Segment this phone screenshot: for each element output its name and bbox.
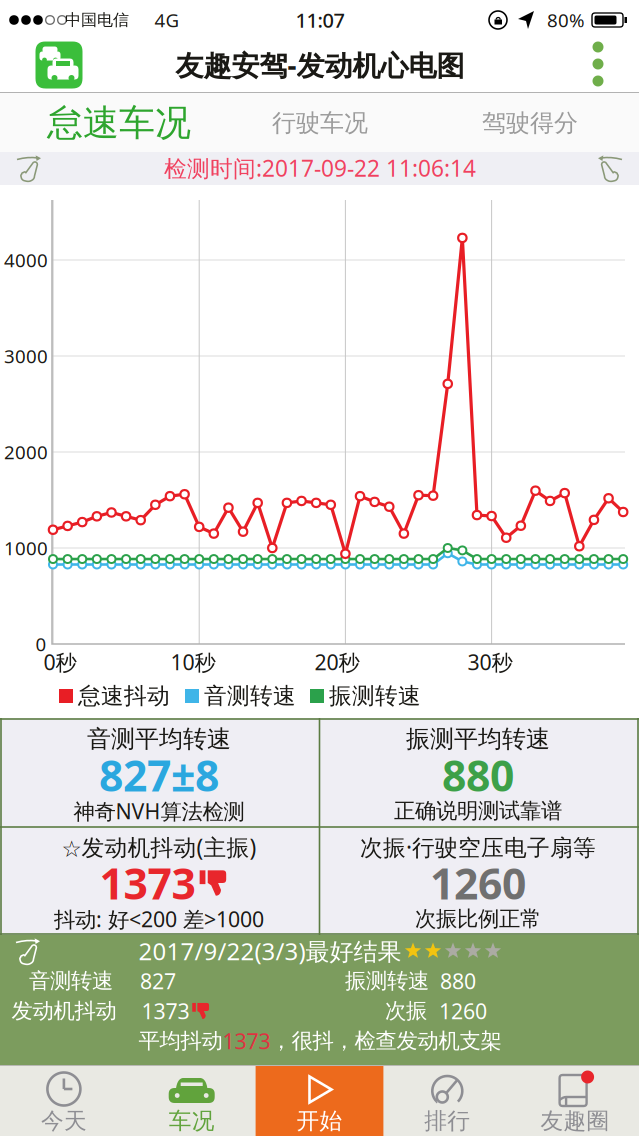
staticText: 3000 [4,344,48,368]
staticText: 行驶车况 [272,108,368,138]
staticText: 友趣圈 [541,1107,610,1135]
staticText: 检测时间:2017-09-22 11:06:14 [164,153,476,183]
staticText: 中国电信 [65,10,129,30]
button[interactable]: 行驶车况 [214,93,426,152]
staticText: 振测转速 [329,682,421,710]
staticText: 神奇NVH算法检测 [73,797,244,825]
staticText: 音测转速 [204,682,296,710]
staticText: 音测平均转速 [87,724,231,754]
staticText: 开始 [296,1107,342,1135]
button[interactable]: 驾驶得分 [424,93,636,152]
staticText: 发动机抖动 [11,998,116,1024]
button[interactable] [597,154,627,182]
staticText: 今天 [41,1107,87,1135]
staticText: 1373 [141,997,189,1025]
staticText: 1260 [439,997,487,1025]
button[interactable]: 排行 [383,1065,511,1136]
staticText: 880 [440,967,476,995]
staticText: 次振 [385,998,427,1024]
staticText: 1373 [99,855,195,911]
staticText: 次振·行驶空压电子扇等 [360,832,596,862]
staticText: 振测转速 [345,968,429,994]
staticText: 友趣安驾-发动机心电图 [175,46,464,84]
button[interactable]: 开始 [256,1065,383,1136]
staticText: 怠速抖动 [78,682,170,710]
staticText: 车况 [169,1107,215,1135]
staticText: 11:07 [295,7,344,33]
button[interactable]: 怠速车况 [13,93,225,152]
staticText: 4000 [4,248,48,272]
staticText: 20秒 [314,648,359,676]
staticText: 2000 [4,440,48,464]
staticText: 827±8 [99,747,219,803]
button[interactable]: 友趣圈 [511,1065,639,1136]
staticText: 音测转速 [29,968,113,994]
staticText: 880 [442,747,514,803]
staticText: 0 [35,632,46,656]
staticText: 次振比例正常 [415,906,541,932]
staticText: 怠速车况 [47,101,191,145]
staticText: 正确说明测试靠谱 [394,798,562,824]
staticText: 30秒 [467,648,512,676]
button[interactable] [12,154,42,182]
staticText: 10秒 [170,648,215,676]
staticText: 1260 [430,855,526,911]
staticText: 4G [154,8,179,32]
staticText: 80% [547,8,585,32]
staticText: 排行 [424,1107,470,1135]
staticText: 抖动: 好<200 差>1000 [54,905,264,933]
staticText: 0秒 [43,648,76,676]
button[interactable] [592,41,603,87]
staticText: 振测平均转速 [406,724,550,754]
staticText: 平均抖动 [138,1028,222,1054]
staticText: 1373 [222,1027,270,1055]
button[interactable] [35,41,82,88]
staticText: 1000 [4,536,48,560]
staticText: 827 [140,967,176,995]
staticText: 2017/9/22(3/3)最好结果 [138,935,401,967]
staticText: 驾驶得分 [482,108,578,138]
staticText: ，很抖，检查发动机支架 [270,1028,501,1054]
button[interactable]: 车况 [128,1065,256,1136]
staticText: ☆发动机抖动(主振) [61,832,256,862]
button[interactable]: 今天 [0,1065,128,1136]
